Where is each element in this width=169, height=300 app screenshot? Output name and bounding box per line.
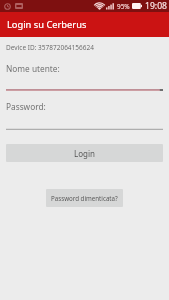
staticText: Password: <box>6 101 46 112</box>
staticText: Login <box>74 148 95 159</box>
staticText: 19:08 <box>145 0 167 12</box>
staticText: Login su Cerberus <box>7 18 87 31</box>
staticText: Device ID: 357872064156624 <box>6 43 94 52</box>
staticText: 95% <box>117 2 130 11</box>
staticText: Password dimenticata? <box>51 194 118 202</box>
staticText: Nome utente: <box>6 63 60 74</box>
button[interactable]: Nome utente: <box>6 63 163 91</box>
button[interactable]: Password: <box>6 101 163 130</box>
button[interactable]: Password dimenticata? <box>46 189 123 207</box>
button[interactable]: Login <box>6 144 163 162</box>
